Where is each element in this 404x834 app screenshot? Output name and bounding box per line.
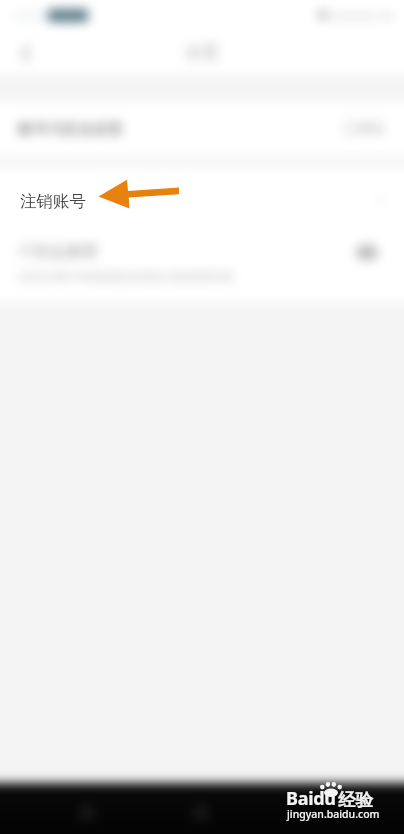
staticText: jingyan.baidu.com [287, 807, 380, 821]
staticText: 10:24 [13, 7, 44, 23]
staticText: 经验 [338, 789, 373, 811]
staticText: 账号与安全设置 [18, 120, 123, 139]
button[interactable]: 注销账号 [0, 168, 404, 234]
staticText: 已绑定 [344, 120, 386, 138]
staticText: Baidu [286, 786, 336, 811]
button[interactable]: Back [12, 39, 40, 67]
button[interactable]: 个性化推荐 [0, 232, 404, 302]
button[interactable]: 账号与安全设置 [0, 101, 404, 157]
staticText: 设置 [185, 42, 219, 63]
staticText: 个性化推荐 [18, 242, 98, 262]
staticText: 注销账号 [20, 191, 86, 212]
